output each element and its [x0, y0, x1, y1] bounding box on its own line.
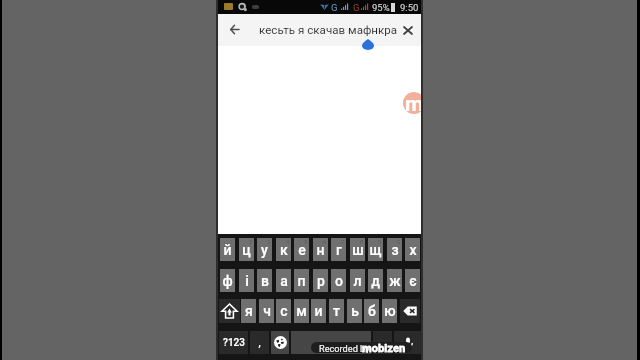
staticText: є — [409, 273, 417, 289]
staticText: 6 — [323, 238, 327, 245]
staticText: о — [335, 273, 343, 289]
button[interactable]: х — [405, 238, 420, 261]
staticText: 8 — [360, 238, 364, 245]
staticText: д — [371, 273, 380, 289]
button[interactable]: а — [276, 269, 291, 292]
staticText: у — [261, 242, 268, 258]
button[interactable]: у — [257, 238, 272, 261]
button[interactable]: щ — [368, 238, 383, 261]
staticText: р — [317, 273, 325, 289]
staticText: е — [298, 242, 306, 258]
staticText: ц — [242, 242, 251, 258]
button[interactable]: Change keyboard language — [271, 331, 289, 354]
staticText: к — [280, 242, 288, 258]
button[interactable]: . — [373, 331, 392, 354]
staticText: 2 — [249, 238, 253, 245]
staticText: н — [316, 242, 325, 258]
staticText: G — [353, 2, 360, 13]
staticText: а — [280, 273, 288, 289]
staticText: 95% — [372, 2, 390, 13]
button[interactable]: з — [387, 238, 402, 261]
staticText: 9:50 — [400, 2, 419, 13]
button[interactable]: т — [329, 299, 344, 323]
staticText: ч — [263, 303, 271, 319]
staticText: ф — [222, 273, 233, 289]
staticText: с — [280, 303, 288, 319]
staticText: і — [245, 273, 249, 289]
button[interactable]: б — [364, 299, 379, 323]
staticText: 5 — [304, 238, 308, 245]
staticText: 9 — [378, 238, 382, 245]
staticText: л — [353, 273, 362, 289]
staticText: б — [368, 303, 376, 319]
staticText: м — [296, 303, 307, 319]
staticText: . — [381, 337, 384, 349]
staticText: 7 — [341, 238, 345, 245]
button[interactable]: і — [239, 269, 254, 292]
staticText: ?123 — [223, 337, 245, 349]
button[interactable]: ф — [220, 269, 235, 292]
button[interactable]: ж — [387, 269, 402, 292]
staticText: кесьть я скачав мафнкра — [259, 23, 398, 37]
staticText: ю — [384, 303, 396, 319]
button[interactable]: ?123 — [219, 331, 248, 354]
staticText: и — [314, 303, 323, 319]
button[interactable]: ц — [239, 238, 254, 261]
button[interactable]: г — [331, 238, 346, 261]
button[interactable]: й — [220, 238, 235, 261]
staticText: Recorded by — [319, 343, 370, 353]
staticText: ш — [352, 242, 364, 258]
button[interactable]: н — [313, 238, 328, 261]
button[interactable]: я — [241, 299, 256, 323]
staticText: п — [297, 273, 306, 289]
button[interactable]: ч — [259, 299, 274, 323]
staticText: , — [258, 337, 261, 349]
staticText: г — [336, 242, 342, 258]
button[interactable]: Voice input — [394, 331, 421, 354]
button[interactable]: п — [294, 269, 309, 292]
staticText: я — [245, 303, 253, 319]
button[interactable]: Shift — [219, 299, 240, 323]
staticText: G — [331, 2, 338, 13]
button[interactable]: ь — [347, 299, 362, 323]
staticText: з — [391, 242, 399, 258]
staticText: ж — [389, 273, 401, 289]
button[interactable]: к — [276, 238, 291, 261]
staticText: ь — [351, 303, 359, 319]
button[interactable]: р — [313, 269, 328, 292]
button[interactable]: ш — [350, 238, 365, 261]
button[interactable]: Back — [222, 17, 248, 43]
staticText: 4 — [286, 238, 290, 245]
button[interactable]: , — [250, 331, 269, 354]
staticText: х — [409, 242, 417, 258]
staticText: 1 — [230, 238, 234, 245]
button[interactable]: Backspace — [400, 299, 420, 323]
staticText: mobizen — [362, 342, 406, 353]
button[interactable]: е — [294, 238, 309, 261]
button[interactable]: о — [331, 269, 346, 292]
button[interactable]: Space — [291, 331, 371, 354]
staticText: m — [405, 92, 421, 114]
button[interactable]: є — [405, 269, 420, 292]
button[interactable]: д — [368, 269, 383, 292]
staticText: в — [261, 273, 269, 289]
button[interactable]: в — [257, 269, 272, 292]
staticText: 3 — [267, 238, 271, 245]
button[interactable]: ю — [382, 299, 397, 323]
button[interactable]: Clear — [396, 19, 419, 42]
button[interactable]: с — [276, 299, 291, 323]
button[interactable]: и — [311, 299, 326, 323]
staticText: т — [333, 303, 340, 319]
staticText: 0 — [397, 238, 401, 245]
button[interactable]: л — [350, 269, 365, 292]
staticText: щ — [369, 242, 382, 258]
staticText: й — [223, 242, 232, 258]
button[interactable]: м — [294, 299, 309, 323]
